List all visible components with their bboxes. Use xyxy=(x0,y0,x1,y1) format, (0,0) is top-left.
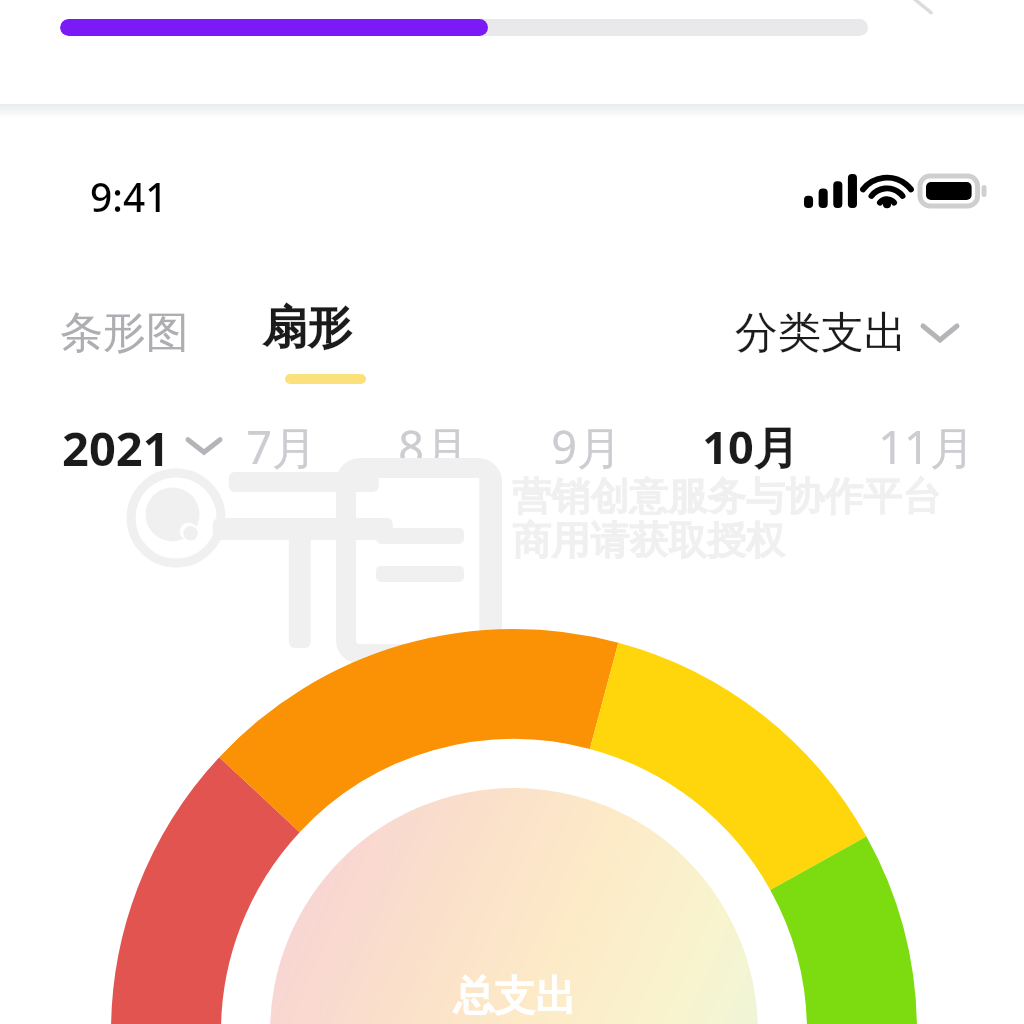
button[interactable]: Progress xyxy=(60,19,868,36)
staticText: 9月 xyxy=(551,416,622,476)
staticText: 商用请获取授权 xyxy=(512,516,785,565)
staticText: 9:41 xyxy=(90,170,168,223)
staticText: 分类支出 xyxy=(735,306,907,360)
staticText: 7月 xyxy=(246,416,317,476)
button[interactable]: 7月 xyxy=(221,416,341,476)
staticText: 条形图 xyxy=(60,306,189,360)
staticText: 扇形图 xyxy=(262,300,392,366)
staticText: 10月 xyxy=(702,416,799,476)
button[interactable]: 条形图 xyxy=(56,302,192,364)
button[interactable]: 扇形图 xyxy=(262,300,392,366)
staticText: 11月 xyxy=(878,416,975,476)
other: Battery xyxy=(918,174,988,208)
button[interactable]: 11月 xyxy=(866,416,986,476)
staticText: 总支出 xyxy=(453,971,576,1023)
button[interactable]: 8月 xyxy=(373,416,493,476)
button[interactable]: 2021 xyxy=(62,416,220,476)
button[interactable]: 10月 xyxy=(690,416,810,476)
button[interactable]: 9月 xyxy=(526,416,646,476)
staticText: 2021 xyxy=(62,416,170,476)
staticText: 8月 xyxy=(398,416,469,476)
staticText: 营销创意服务与协作平台 xyxy=(512,472,941,521)
button[interactable]: 分类支出 xyxy=(735,302,957,364)
button[interactable]: Expense pie chart xyxy=(0,0,1024,1024)
other: Wi-Fi xyxy=(858,172,916,210)
